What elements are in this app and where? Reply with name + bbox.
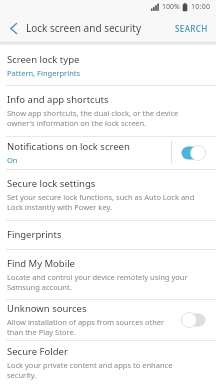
staticText: Samsung account. (7, 282, 72, 292)
button[interactable] (0, 14, 26, 42)
staticText: 100% (162, 2, 180, 12)
button[interactable]: Screen lock type (0, 42, 216, 85)
button[interactable]: Fingerprints (0, 220, 216, 249)
staticText: Show app shortcuts, the dual clock, or t… (7, 108, 179, 118)
staticText: On (7, 155, 18, 165)
staticText: Info and app shortcuts (7, 93, 109, 106)
button[interactable]: Info and app shortcuts (0, 85, 216, 136)
staticText: Find My Mobile (7, 257, 75, 270)
staticText: Pattern, Fingerprints (7, 68, 81, 78)
staticText: Secure Folder (7, 345, 68, 358)
staticText: Locate and control your device remotely … (7, 272, 188, 282)
staticText: Unknown sources (7, 302, 87, 315)
staticText: Lock instantly with Power key. (7, 202, 112, 212)
staticText: Screen lock type (7, 53, 80, 66)
button[interactable]: Secure lock settings (0, 169, 216, 220)
button[interactable] (181, 145, 206, 161)
staticText: owner's information on the lock screen. (7, 118, 147, 128)
button[interactable]: Find My Mobile (0, 249, 216, 299)
staticText: 10:00 (191, 2, 211, 12)
button[interactable]: SEARCH (167, 14, 216, 42)
staticText: Lock your private content and apps to en… (7, 360, 173, 370)
button[interactable] (181, 312, 206, 328)
button[interactable]: Unknown sources (0, 299, 216, 340)
button[interactable]: Secure Folder (0, 340, 216, 384)
staticText: Fingerprints (7, 228, 62, 241)
staticText: Secure lock settings (7, 177, 96, 190)
staticText: than the Play Store. (7, 327, 76, 337)
staticText: Notifications on lock screen (7, 140, 130, 153)
staticText: SEARCH (175, 23, 208, 34)
staticText: Lock screen and security (26, 21, 141, 35)
button[interactable]: Notifications on lock screen (0, 136, 216, 169)
staticText: Allow installation of apps from sources … (7, 317, 165, 327)
staticText: security. (7, 370, 37, 380)
staticText: Set your secure lock functions, such as … (7, 192, 195, 202)
